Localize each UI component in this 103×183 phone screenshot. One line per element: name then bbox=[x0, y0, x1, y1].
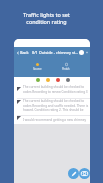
staticText: Source bbox=[33, 67, 42, 71]
staticText: Finish bbox=[62, 67, 70, 71]
button[interactable]: Rating bbox=[46, 78, 50, 82]
staticText: Traffic lights to set bbox=[23, 11, 70, 18]
button[interactable]: More options bbox=[86, 50, 88, 55]
staticText: The current building should be checked t… bbox=[23, 99, 85, 103]
button[interactable]: Source bbox=[29, 63, 45, 71]
button[interactable]: Rating bbox=[56, 78, 60, 82]
staticText: The current building should be checked t… bbox=[23, 85, 85, 89]
staticText: 8/1 Outside - chimney st... bbox=[32, 50, 79, 55]
staticText: hazard. Condition rating 2. This should … bbox=[23, 108, 84, 112]
staticText: codes Recording and scaffic needed. Ther… bbox=[23, 104, 89, 108]
staticText: Back bbox=[20, 50, 29, 55]
staticText: codes Recording to renew Condition ratin… bbox=[23, 90, 88, 94]
staticText: I would recommend getting a new chimney bbox=[23, 118, 86, 122]
button[interactable]: Camera bbox=[79, 168, 90, 179]
staticText: condition rating bbox=[26, 18, 67, 25]
button[interactable]: Rating bbox=[66, 78, 70, 82]
button[interactable]: Rating bbox=[36, 78, 40, 82]
button[interactable]: Finish bbox=[58, 63, 74, 71]
button[interactable]: Back bbox=[16, 50, 29, 55]
button[interactable]: Info bbox=[79, 50, 84, 55]
button[interactable]: Edit bbox=[68, 168, 79, 179]
